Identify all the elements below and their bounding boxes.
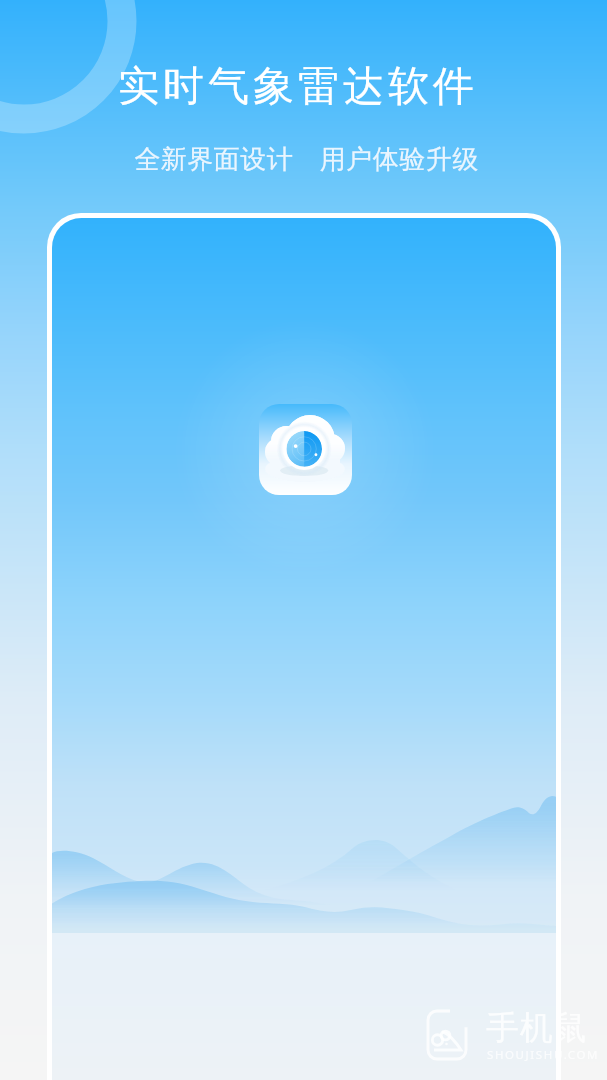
staticText: 实时气象雷达软件	[116, 61, 476, 113]
staticText: SHOUJISHU.COM	[487, 1047, 600, 1063]
button[interactable]: Weather radar app	[259, 404, 352, 495]
staticText: 手机鼠	[486, 1007, 588, 1049]
staticText: 全新界面设计 用户体验升级	[134, 140, 479, 176]
